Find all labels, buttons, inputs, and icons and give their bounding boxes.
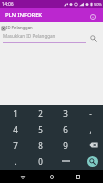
staticText: 8	[38, 140, 43, 151]
staticText: 50%	[94, 2, 102, 7]
staticText: 5	[38, 124, 43, 135]
button[interactable]: Info	[87, 11, 98, 22]
staticText: ID Pelanggan	[6, 25, 33, 31]
staticText: 2	[38, 108, 43, 119]
button[interactable]: 7	[2, 137, 28, 153]
staticText: -	[89, 108, 92, 119]
staticText: 4	[13, 124, 18, 135]
staticText: 7	[13, 140, 18, 151]
staticText: 0	[38, 156, 43, 167]
button[interactable]: 4	[2, 121, 28, 137]
button[interactable]: Backspace	[78, 137, 103, 153]
button[interactable]: 5	[28, 121, 53, 137]
staticText: ,	[89, 124, 92, 135]
button[interactable]: 8	[28, 137, 53, 153]
staticText: .	[14, 156, 17, 167]
button[interactable]: 0	[28, 153, 53, 169]
button[interactable]: 1	[2, 105, 28, 121]
staticText: Masukkan ID Pelanggan	[3, 33, 56, 39]
button[interactable]: Home	[46, 171, 58, 183]
staticText: PLN INFOREK	[5, 11, 43, 19]
staticText: 3	[63, 108, 68, 119]
staticText: 6	[63, 124, 68, 135]
staticText: 9	[63, 140, 68, 151]
button[interactable]: 9	[53, 137, 78, 153]
button[interactable]: Search	[78, 153, 103, 169]
staticText: 1	[13, 108, 18, 119]
button[interactable]	[53, 153, 78, 169]
button[interactable]: Recents	[72, 171, 84, 183]
button[interactable]: Search	[88, 33, 99, 44]
button[interactable]: ,	[78, 121, 103, 137]
button[interactable]: Search	[87, 156, 98, 167]
button[interactable]: 2	[28, 105, 53, 121]
button[interactable]: Back	[17, 171, 29, 183]
other: Backspace	[89, 142, 98, 148]
button[interactable]: .	[2, 153, 28, 169]
button[interactable]: 3	[53, 105, 78, 121]
staticText: 14:06	[2, 1, 14, 7]
button[interactable]: -	[78, 105, 103, 121]
button[interactable]: 6	[53, 121, 78, 137]
